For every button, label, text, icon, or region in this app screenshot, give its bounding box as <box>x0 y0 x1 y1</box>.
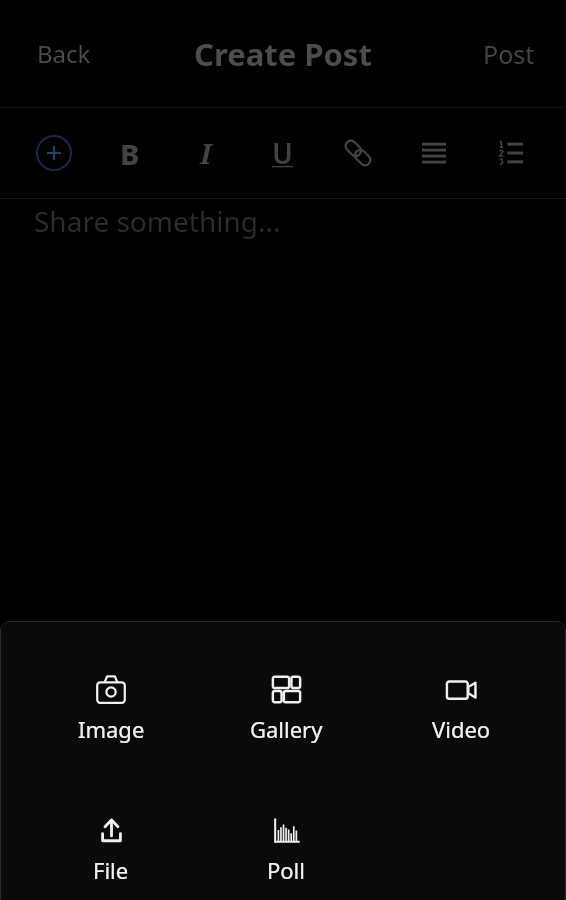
button[interactable]: Post <box>466 27 552 81</box>
button[interactable]: Link <box>332 127 384 179</box>
staticText: Share something... <box>34 202 281 240</box>
staticText: B <box>120 134 140 173</box>
button[interactable]: Share something... <box>0 199 566 900</box>
staticText: Create Post <box>194 33 372 75</box>
staticText: File <box>93 855 129 885</box>
staticText: Gallery <box>250 714 323 744</box>
staticText: Image <box>78 714 145 744</box>
button[interactable]: Image <box>51 673 171 744</box>
button[interactable]: File <box>51 814 171 885</box>
button[interactable]: Align <box>408 127 460 179</box>
button[interactable]: Underline <box>256 127 308 179</box>
staticText: Video <box>432 714 491 744</box>
button[interactable]: Italic <box>180 127 232 179</box>
staticText: Back <box>37 37 91 70</box>
button[interactable]: Bold <box>104 127 156 179</box>
staticText: Post <box>483 37 535 71</box>
staticText: U <box>272 134 293 172</box>
button[interactable]: Gallery <box>226 673 346 744</box>
button[interactable]: Video <box>401 673 521 744</box>
button[interactable]: Poll <box>226 814 346 885</box>
button[interactable]: Numbered list <box>484 127 536 179</box>
staticText: I <box>200 134 212 172</box>
button[interactable]: Add <box>28 127 80 179</box>
button[interactable]: Back <box>20 27 108 80</box>
staticText: Poll <box>267 855 305 885</box>
